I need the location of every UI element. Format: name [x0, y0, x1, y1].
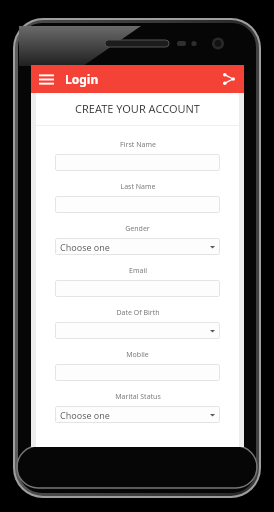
button[interactable]	[55, 280, 220, 297]
button[interactable]: Share	[217, 67, 241, 91]
button[interactable]	[55, 154, 220, 171]
staticText: Last Name	[120, 182, 156, 192]
staticText: Email	[129, 266, 147, 276]
staticText: Mobile	[126, 350, 149, 360]
staticText: Date Of Birth	[116, 308, 160, 318]
button[interactable]	[55, 196, 220, 213]
button[interactable]	[55, 322, 220, 339]
staticText: Login	[65, 71, 99, 87]
staticText: Choose one	[60, 409, 110, 421]
staticText: First Name	[120, 140, 156, 150]
staticText: Marital Status	[115, 392, 161, 402]
button[interactable]: Choose one	[55, 406, 220, 423]
staticText: CREATE YOUR ACCOUNT	[75, 101, 200, 116]
button[interactable]	[55, 364, 220, 381]
button[interactable]: Open navigation menu	[35, 68, 57, 90]
button[interactable]: Choose one	[55, 238, 220, 255]
staticText: Choose one	[60, 241, 110, 253]
staticText: Gender	[125, 224, 150, 234]
